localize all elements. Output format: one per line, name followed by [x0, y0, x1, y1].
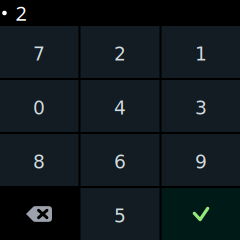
button[interactable]: 4: [80, 80, 159, 132]
button[interactable]: 3: [161, 80, 240, 132]
staticText: 5: [114, 205, 126, 227]
button[interactable]: 7: [0, 26, 78, 78]
staticText: 7: [33, 43, 45, 65]
staticText: 2: [114, 43, 126, 65]
button[interactable]: 0: [0, 80, 78, 132]
staticText: 1: [195, 43, 207, 65]
button[interactable]: Confirm passcode: [161, 188, 240, 240]
button[interactable]: 8: [0, 134, 78, 186]
staticText: 0: [33, 97, 45, 119]
staticText: 4: [114, 97, 126, 119]
staticText: 9: [195, 151, 207, 173]
button[interactable]: Delete: [0, 188, 78, 240]
button[interactable]: 5: [80, 188, 159, 240]
staticText: 3: [195, 97, 207, 119]
staticText: 8: [33, 151, 45, 173]
button[interactable]: 9: [161, 134, 240, 186]
button[interactable]: 6: [80, 134, 159, 186]
staticText: 2: [15, 0, 26, 26]
staticText: 6: [114, 151, 126, 173]
button[interactable]: 2: [80, 26, 159, 78]
button[interactable]: 1: [161, 26, 240, 78]
